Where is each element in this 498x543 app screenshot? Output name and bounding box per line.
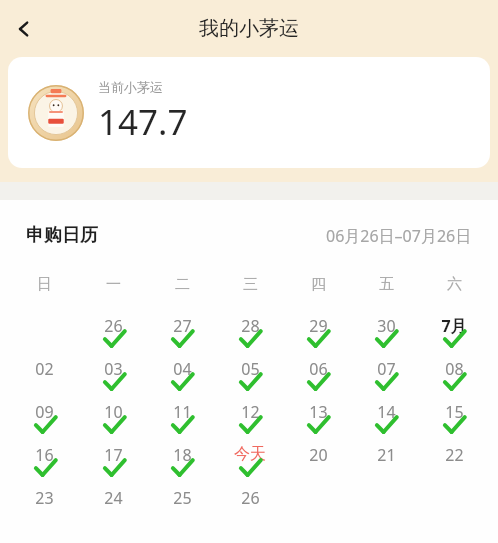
staticText: 26 [104, 315, 123, 337]
button[interactable]: 12 [216, 400, 284, 443]
staticText: 申购日历 [26, 224, 98, 247]
staticText: 07 [377, 358, 396, 380]
staticText: 17 [104, 444, 123, 466]
button[interactable]: 27 [148, 314, 216, 357]
staticText: 08 [445, 358, 464, 380]
button[interactable]: 今天 [216, 443, 284, 486]
button[interactable]: 16 [10, 443, 79, 486]
staticText: 06 [309, 358, 328, 380]
staticText: 02 [35, 358, 54, 380]
staticText: 09 [35, 401, 54, 423]
staticText: 03 [104, 358, 123, 380]
button[interactable]: 25 [148, 486, 216, 529]
button[interactable]: 11 [148, 400, 216, 443]
staticText: 27 [173, 315, 192, 337]
button[interactable]: 10 [79, 400, 148, 443]
button[interactable]: 22 [420, 443, 488, 486]
button[interactable]: 21 [352, 443, 420, 486]
staticText: 日 [37, 275, 52, 294]
staticText: 18 [173, 444, 192, 466]
staticText: 12 [241, 401, 260, 423]
button[interactable]: 当前小茅运 [8, 57, 490, 168]
button[interactable]: 02 [10, 357, 79, 400]
staticText: 05 [241, 358, 260, 380]
staticText: 11 [173, 401, 192, 423]
staticText: 24 [104, 487, 123, 509]
button[interactable]: 14 [352, 400, 420, 443]
staticText: 04 [173, 358, 192, 380]
staticText: 二 [175, 275, 190, 294]
staticText: 三 [243, 275, 258, 294]
staticText: 六 [447, 275, 462, 294]
button[interactable]: 15 [420, 400, 488, 443]
button[interactable]: 18 [148, 443, 216, 486]
staticText: 20 [309, 444, 328, 466]
staticText: 7月 [441, 315, 467, 337]
staticText: 25 [173, 487, 192, 509]
button[interactable]: 09 [10, 400, 79, 443]
staticText: 13 [309, 401, 328, 423]
staticText: 一 [106, 275, 121, 294]
staticText: 28 [241, 315, 260, 337]
button[interactable]: 13 [284, 400, 352, 443]
button[interactable]: 29 [284, 314, 352, 357]
staticText: 16 [35, 444, 54, 466]
staticText: 今天 [234, 444, 266, 464]
staticText: 06月26日–07月26日 [326, 225, 472, 247]
button[interactable]: 04 [148, 357, 216, 400]
button[interactable]: 20 [284, 443, 352, 486]
staticText: 14 [377, 401, 396, 423]
staticText: 15 [445, 401, 464, 423]
staticText: 23 [35, 487, 54, 509]
button[interactable]: 03 [79, 357, 148, 400]
button[interactable]: 07 [352, 357, 420, 400]
staticText: 10 [104, 401, 123, 423]
button[interactable]: 7月 [420, 314, 488, 357]
button[interactable]: 28 [216, 314, 284, 357]
staticText: 26 [241, 487, 260, 509]
button[interactable]: 05 [216, 357, 284, 400]
button[interactable]: 30 [352, 314, 420, 357]
button[interactable]: 08 [420, 357, 488, 400]
staticText: 五 [379, 275, 394, 294]
button[interactable]: 24 [79, 486, 148, 529]
staticText: 21 [377, 444, 396, 466]
staticText: 147.7 [98, 98, 188, 146]
staticText: 我的小茅运 [199, 16, 299, 41]
staticText: 29 [309, 315, 328, 337]
staticText: 四 [311, 275, 326, 294]
staticText: 当前小茅运 [98, 79, 163, 95]
button[interactable]: 23 [10, 486, 79, 529]
button[interactable]: 26 [79, 314, 148, 357]
staticText: 22 [445, 444, 464, 466]
staticText: 30 [377, 315, 396, 337]
button[interactable]: 06 [284, 357, 352, 400]
button[interactable]: 26 [216, 486, 284, 529]
button[interactable]: Back [2, 7, 46, 51]
button[interactable]: 17 [79, 443, 148, 486]
